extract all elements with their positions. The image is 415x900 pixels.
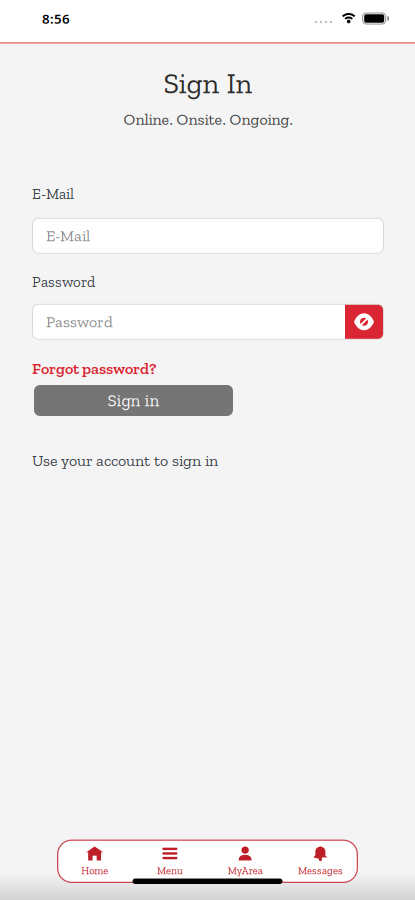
- button[interactable]: Menu: [132, 846, 207, 877]
- staticText: Sign In: [163, 66, 252, 101]
- button[interactable]: Home: [57, 846, 132, 877]
- staticText: 8:56: [42, 10, 70, 27]
- button[interactable]: Messages: [283, 846, 358, 877]
- staticText: E-Mail: [32, 185, 74, 203]
- staticText: Home: [81, 864, 108, 877]
- button[interactable]: Show password: [345, 305, 383, 339]
- button[interactable]: Password: [32, 304, 384, 340]
- staticText: Use your account to sign in: [32, 451, 218, 470]
- staticText: MyArea: [228, 864, 263, 877]
- staticText: Menu: [157, 864, 183, 877]
- staticText: Password: [32, 273, 95, 291]
- staticText: Messages: [298, 864, 343, 877]
- button[interactable]: E-Mail: [32, 218, 384, 254]
- staticText: Password: [46, 312, 113, 331]
- button[interactable]: MyArea: [207, 846, 283, 877]
- staticText: Online. Onsite. Ongoing.: [123, 110, 292, 129]
- button[interactable]: Sign in: [34, 385, 233, 416]
- staticText: Forgot password?: [32, 359, 156, 378]
- staticText: E-Mail: [46, 226, 90, 245]
- staticText: Sign in: [107, 390, 159, 411]
- button[interactable]: Forgot password?: [32, 359, 156, 378]
